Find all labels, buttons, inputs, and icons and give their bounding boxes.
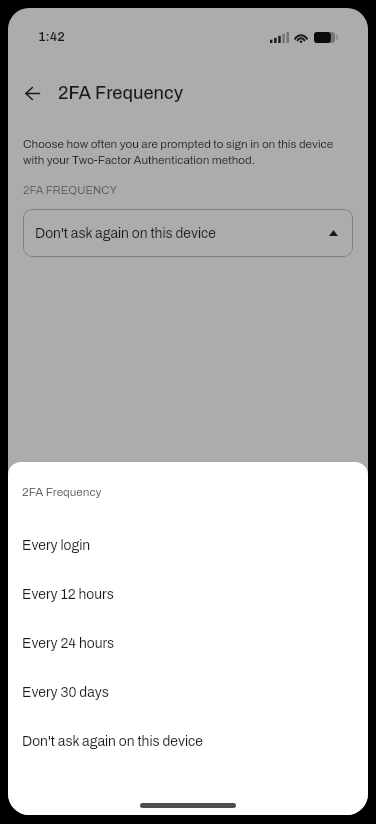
staticText: Every 30 days [22, 685, 109, 700]
staticText: 2FA FREQUENCY [23, 184, 117, 196]
staticText: 2FA Frequency [22, 486, 102, 499]
staticText: Don't ask again on this device [35, 226, 216, 241]
staticText: Every login [22, 538, 91, 553]
button[interactable]: Don't ask again on this device [8, 717, 368, 766]
staticText: Don't ask again on this device [22, 734, 203, 749]
staticText: 2FA Frequency [58, 83, 184, 103]
button[interactable]: Every 24 hours [8, 619, 368, 668]
button[interactable]: Don't ask again on this device [23, 209, 353, 257]
button[interactable]: Every login [8, 521, 368, 570]
button[interactable]: Back [15, 76, 49, 110]
staticText: Every 24 hours [22, 636, 115, 651]
button[interactable]: Every 12 hours [8, 570, 368, 619]
staticText: Every 12 hours [22, 587, 114, 602]
staticText: 1:42 [38, 30, 65, 44]
staticText: Choose how often you are prompted to sig… [23, 135, 346, 167]
button[interactable]: Every 30 days [8, 668, 368, 717]
